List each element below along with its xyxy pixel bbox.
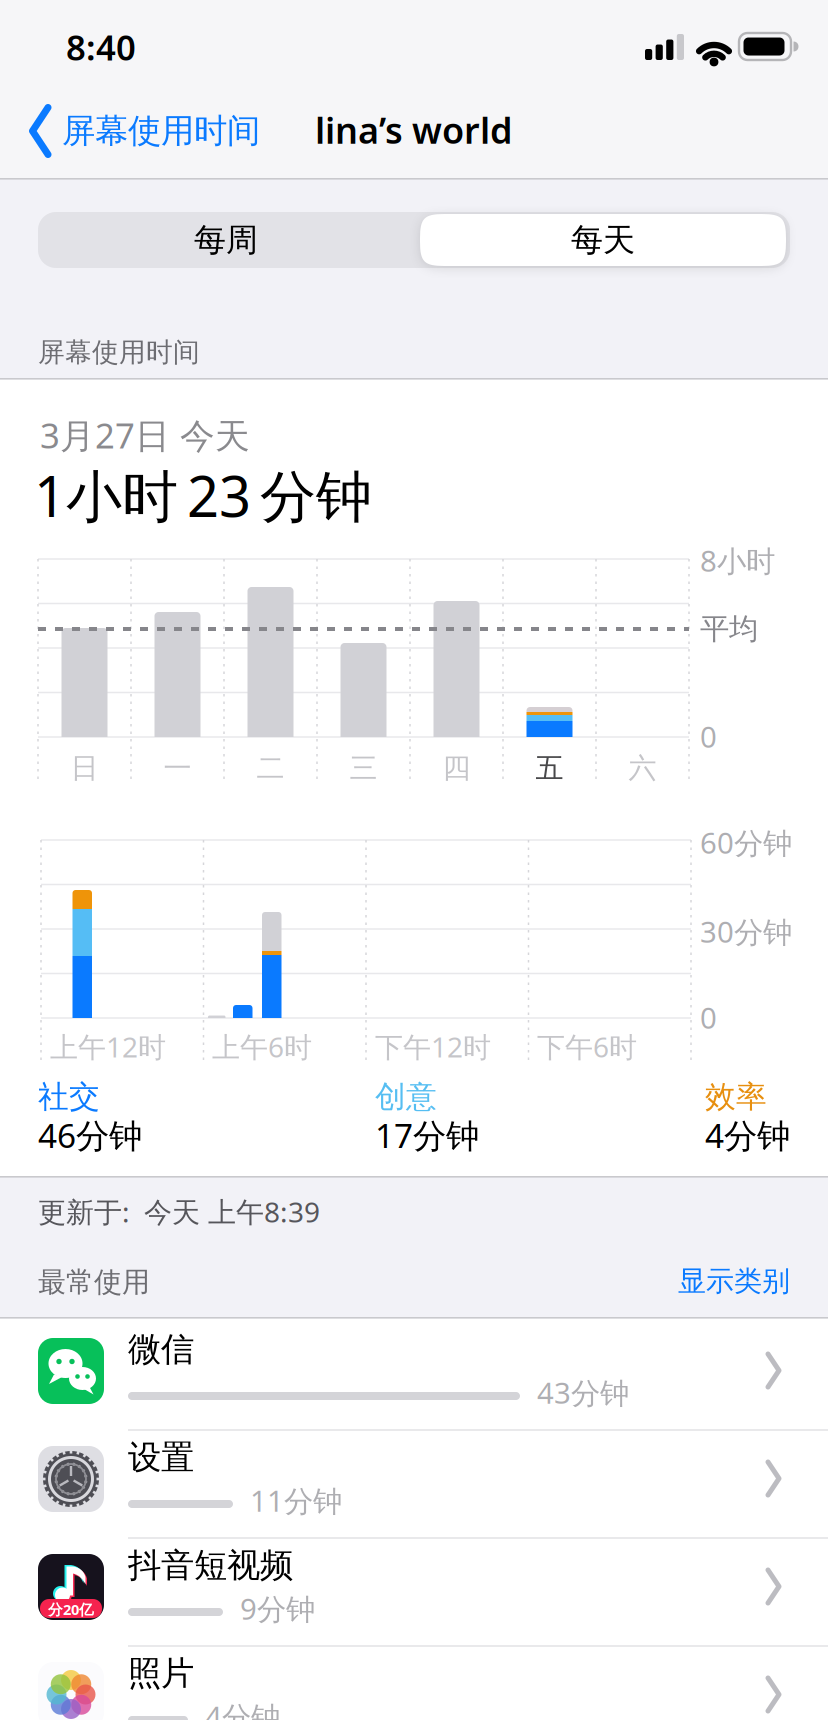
button[interactable]: 微信 [0, 1322, 828, 1430]
staticText: 最常使用 [38, 1265, 150, 1299]
staticText: 显示类别 [678, 1264, 790, 1298]
button[interactable]: 分20亿 [0, 1538, 828, 1646]
staticText: 上午12时 [50, 1028, 166, 1065]
staticText: 二 [256, 751, 284, 785]
staticText: 0 [700, 998, 717, 1037]
button[interactable]: 显示类别 [678, 1264, 790, 1298]
staticText: 每周 [194, 220, 258, 260]
staticText: 3月27日 今天 [40, 412, 250, 458]
staticText: 8小时 [700, 541, 775, 580]
staticText: 60分钟 [700, 823, 792, 862]
staticText: 社交 [38, 1078, 100, 1116]
staticText: 一 [163, 751, 191, 785]
staticText: 分20亿 [48, 1599, 94, 1619]
button[interactable]: 每周 [38, 212, 414, 268]
staticText: 更新于: 今天 上午8:39 [38, 1193, 320, 1230]
staticText: 11分钟 [250, 1481, 342, 1520]
button[interactable]: 照片 [0, 1646, 828, 1720]
staticText: 4分钟 [205, 1697, 280, 1720]
staticText: 下午12时 [375, 1028, 491, 1065]
staticText: 1小时 23 分钟 [34, 458, 372, 532]
staticText: 下午6时 [537, 1028, 637, 1065]
staticText: 4分钟 [705, 1113, 790, 1157]
staticText: 屏幕使用时间 [62, 110, 260, 151]
staticText: 每天 [571, 220, 635, 260]
staticText: 屏幕使用时间 [38, 336, 200, 369]
staticText: 平均 [700, 611, 758, 647]
staticText: 微信 [128, 1329, 194, 1370]
staticText: 17分钟 [375, 1113, 479, 1157]
staticText: 创意 [375, 1078, 437, 1116]
button[interactable]: 设置 [0, 1430, 828, 1538]
staticText: 照片 [128, 1653, 194, 1694]
button[interactable]: 返回屏幕使用时间 [30, 106, 260, 156]
staticText: 三 [349, 751, 377, 785]
button[interactable]: 每天 [420, 214, 786, 266]
staticText: 0 [700, 717, 717, 756]
staticText: 日 [70, 751, 98, 785]
staticText: 8:40 [66, 24, 136, 70]
staticText: 五 [535, 751, 563, 785]
staticText: 六 [628, 751, 656, 785]
staticText: 四 [442, 751, 470, 785]
staticText: 43分钟 [537, 1373, 629, 1412]
staticText: 设置 [128, 1437, 194, 1478]
staticText: 30分钟 [700, 912, 792, 951]
staticText: 9分钟 [240, 1589, 315, 1628]
staticText: lina’s world [315, 106, 513, 154]
staticText: 上午6时 [212, 1028, 312, 1065]
staticText: 抖音短视频 [128, 1545, 293, 1586]
staticText: 效率 [705, 1078, 767, 1116]
staticText: 46分钟 [38, 1113, 142, 1157]
